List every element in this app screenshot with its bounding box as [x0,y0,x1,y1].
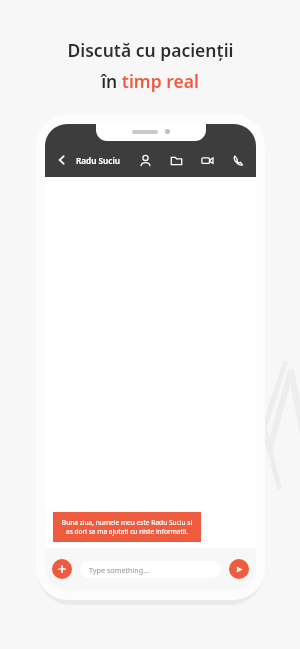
staticText: Type something... [89,565,149,575]
button[interactable]: Back [54,152,70,168]
button[interactable]: Add attachment [52,559,72,579]
button[interactable]: Buna ziua, numele meu este Radu Suciu si… [53,512,201,542]
button[interactable]: Video call [198,151,216,169]
staticText: în timp real [101,69,199,93]
button[interactable]: Type something... [80,561,221,578]
staticText: Buna ziua, numele meu este Radu Suciu si… [60,518,194,536]
button[interactable]: Radu Suciu [76,155,120,166]
staticText: Discută cu pacienții [67,38,234,62]
button[interactable]: Call [229,151,247,169]
button[interactable]: Profile [136,151,154,169]
button[interactable]: Files [167,151,185,169]
button[interactable]: Send [229,559,249,579]
